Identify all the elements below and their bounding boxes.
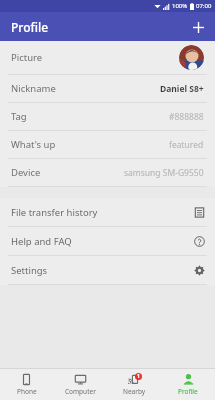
- staticText: Daniel S8+: [160, 83, 204, 95]
- staticText: Profile: [178, 387, 198, 396]
- staticText: Device: [11, 166, 41, 179]
- button[interactable]: Device: [0, 159, 215, 186]
- button[interactable]: Nickname: [0, 75, 215, 102]
- staticText: #888888: [169, 111, 204, 123]
- staticText: Nickname: [11, 82, 56, 95]
- staticText: What's up: [11, 138, 56, 151]
- button[interactable]: Tag: [0, 103, 215, 130]
- staticText: File transfer history: [11, 206, 98, 219]
- staticText: Phone: [17, 387, 37, 396]
- staticText: Settings: [11, 264, 48, 277]
- staticText: 07:00: [196, 2, 212, 10]
- button[interactable]: Phone: [0, 373, 53, 396]
- staticText: samsung SM-G9550: [124, 167, 204, 179]
- staticText: Profile: [11, 19, 49, 35]
- staticText: 1: [137, 373, 140, 380]
- staticText: featured: [169, 139, 204, 151]
- button[interactable]: File transfer history: [0, 198, 215, 226]
- staticText: 100%: [172, 2, 188, 10]
- button[interactable]: Help and FAQ: [0, 227, 215, 255]
- staticText: Nearby: [123, 387, 146, 396]
- button[interactable]: Settings: [0, 256, 215, 284]
- staticText: Help and FAQ: [11, 235, 72, 248]
- button[interactable]: What's up: [0, 131, 215, 158]
- staticText: Picture: [11, 51, 43, 64]
- button[interactable]: Add: [187, 16, 209, 38]
- button[interactable]: 1: [107, 373, 161, 396]
- staticText: Computer: [65, 387, 96, 396]
- button[interactable]: Picture: [0, 41, 215, 74]
- button[interactable]: Profile: [161, 373, 215, 396]
- button[interactable]: Computer: [53, 373, 107, 396]
- staticText: Tag: [11, 110, 27, 123]
